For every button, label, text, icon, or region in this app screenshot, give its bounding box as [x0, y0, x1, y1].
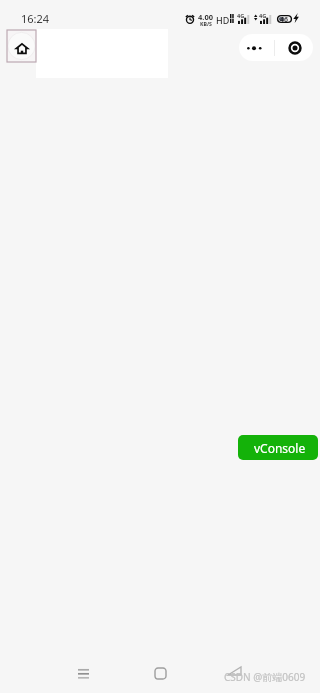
- button[interactable]: Home: [7, 30, 36, 62]
- staticText: KB/S: [200, 20, 212, 27]
- staticText: 46: [280, 15, 289, 23]
- button[interactable]: Home: [140, 653, 180, 693]
- staticText: 4G: [237, 12, 245, 20]
- staticText: 16:24: [21, 11, 50, 26]
- staticText: 4G: [259, 12, 267, 20]
- staticText: vConsole: [254, 440, 306, 456]
- staticText: 4.00: [198, 12, 213, 22]
- staticText: CSDN @前端0609: [224, 670, 306, 684]
- button[interactable]: Close mini program: [275, 34, 313, 61]
- button[interactable]: Recent apps: [63, 653, 103, 693]
- button[interactable]: More options: [239, 34, 274, 61]
- button[interactable]: Back: [214, 651, 254, 691]
- button[interactable]: vConsole: [238, 435, 318, 460]
- staticText: HD: [216, 14, 230, 26]
